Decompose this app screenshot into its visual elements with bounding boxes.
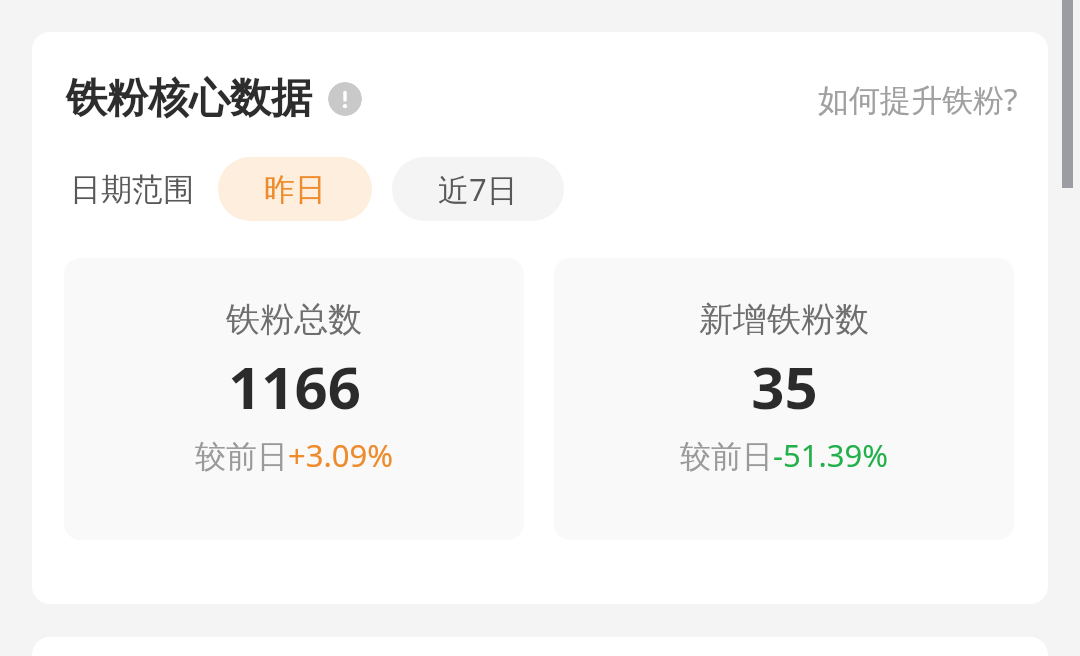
button[interactable]: 如何提升铁粉?: [808, 72, 1028, 126]
staticText: 新增铁粉数: [699, 298, 869, 341]
button[interactable]: 说明: [328, 82, 362, 116]
button[interactable]: 昨日: [218, 157, 372, 221]
staticText: 35: [751, 347, 818, 426]
staticText: 昨日: [264, 170, 326, 209]
staticText: 近7日: [438, 168, 518, 210]
staticText: 铁粉核心数据: [66, 73, 312, 125]
button[interactable]: 铁粉总数: [64, 258, 524, 540]
button[interactable]: 新增铁粉数: [554, 258, 1014, 540]
staticText: 如何提升铁粉?: [818, 78, 1018, 120]
staticText: 较前日-51.39%: [680, 434, 888, 476]
button[interactable]: 近7日: [392, 157, 564, 221]
staticText: 日期范围: [70, 170, 194, 209]
staticText: 铁粉总数: [226, 298, 362, 341]
staticText: 较前日+3.09%: [195, 434, 393, 476]
staticText: 1166: [228, 347, 361, 426]
